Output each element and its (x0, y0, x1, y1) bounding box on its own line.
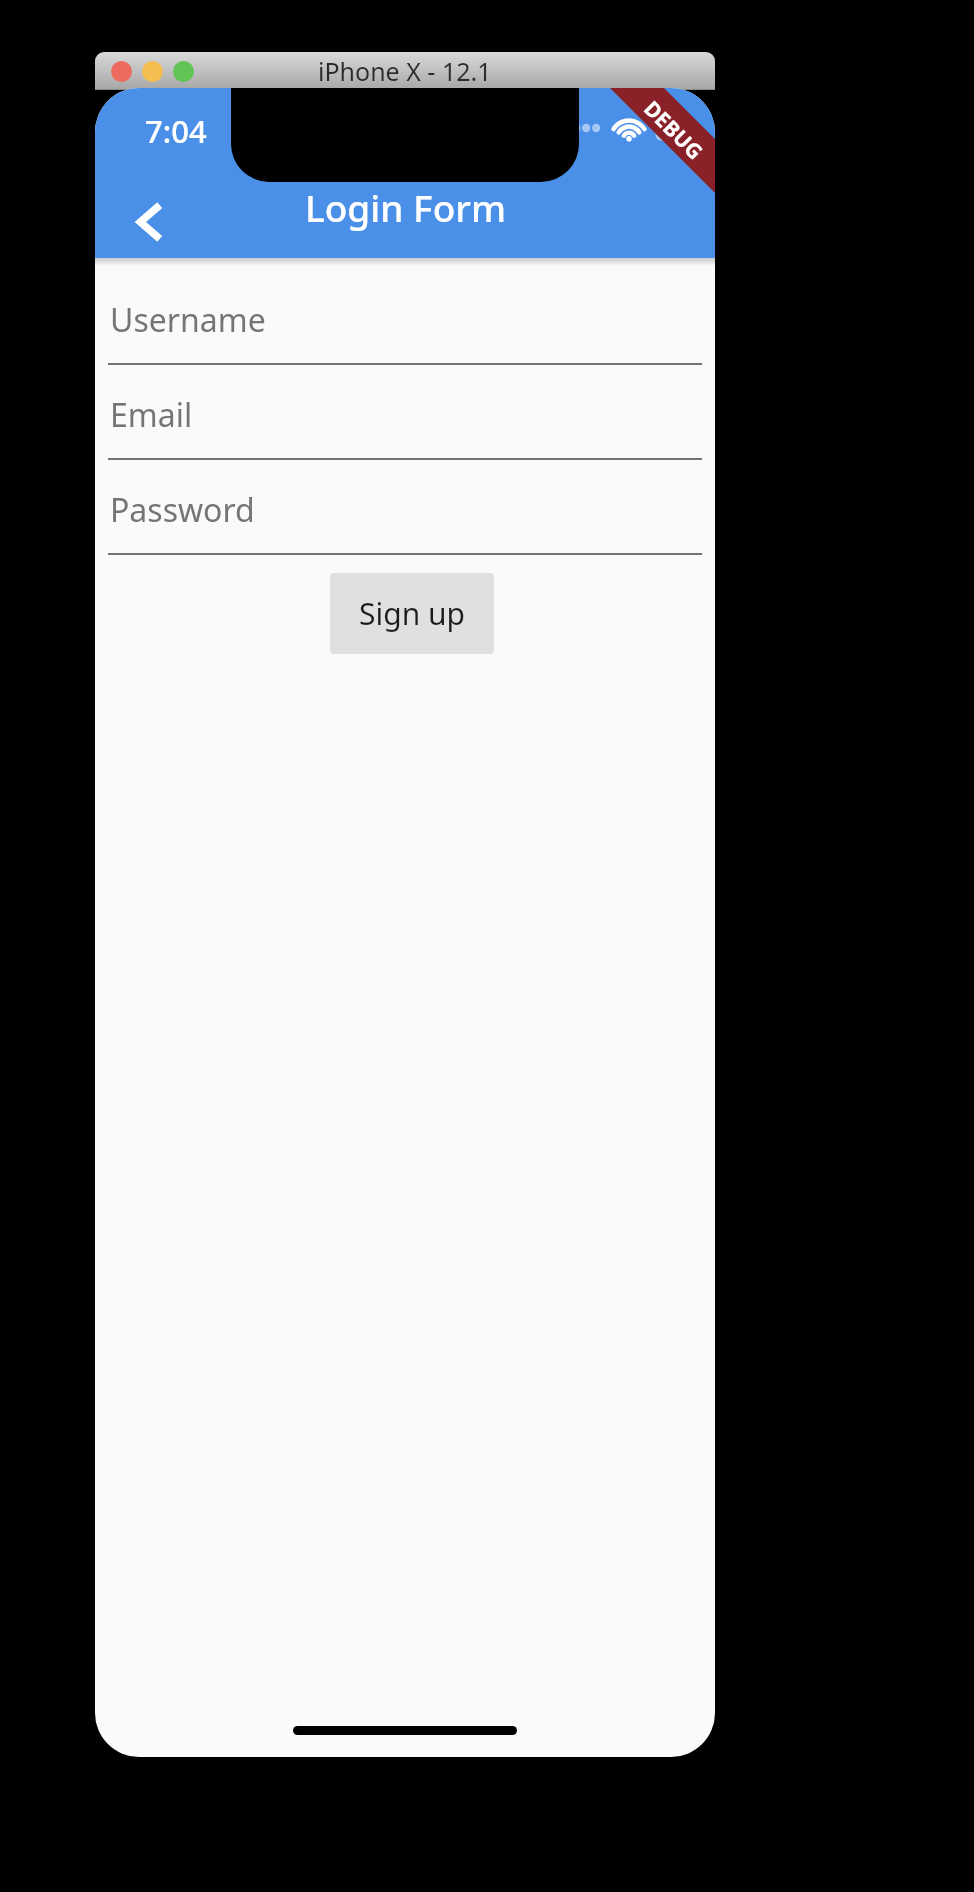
staticText: Sign up (359, 593, 465, 634)
button[interactable] (173, 61, 194, 82)
staticText: iPhone X - 12.1 (318, 54, 492, 88)
button[interactable]: Sign up (330, 573, 494, 654)
button[interactable] (142, 61, 163, 82)
staticText: Username (110, 298, 266, 342)
button[interactable]: Password (108, 460, 702, 555)
staticText: DEBUG (637, 94, 709, 166)
button[interactable] (111, 61, 132, 82)
staticText: Email (110, 393, 193, 437)
staticText: 7:04 (145, 110, 207, 152)
button[interactable]: Back (113, 186, 185, 258)
button[interactable]: Email (108, 365, 702, 460)
staticText: Password (110, 488, 255, 532)
staticText: Login Form (305, 182, 506, 232)
button[interactable]: Username (108, 258, 702, 365)
